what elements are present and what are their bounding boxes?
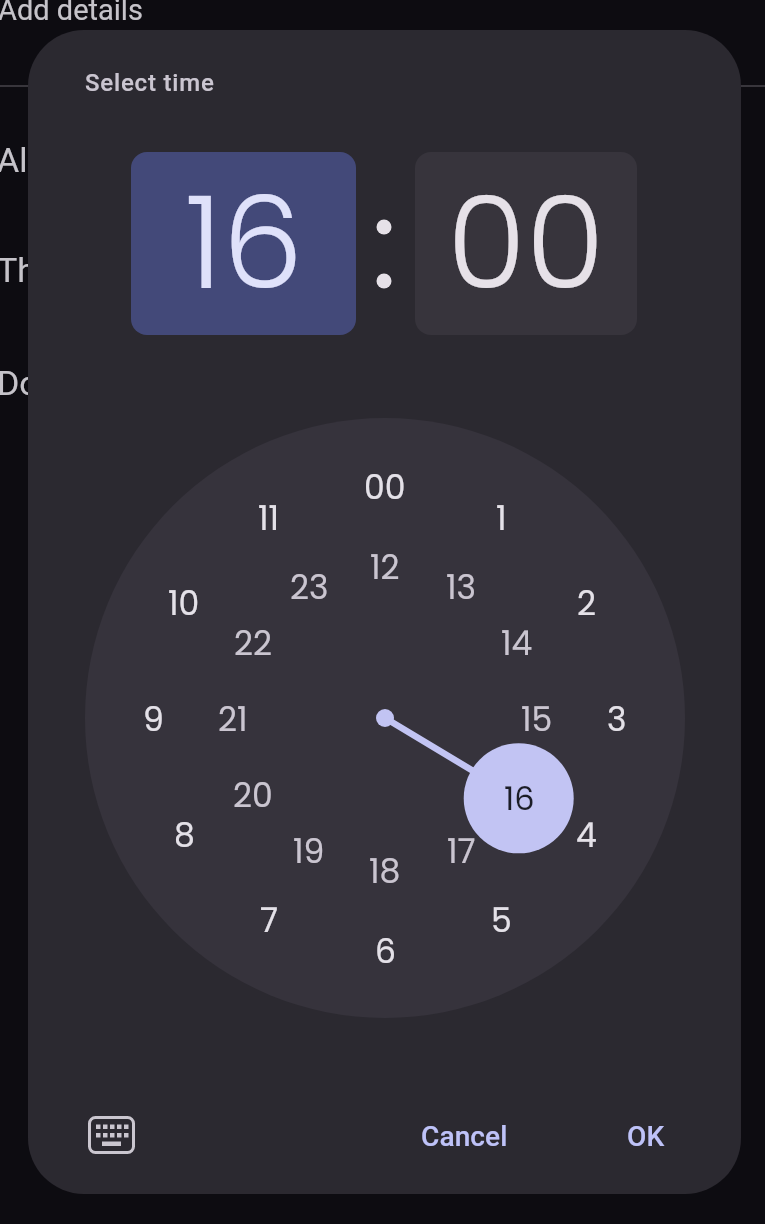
button[interactable]: 00	[415, 152, 637, 335]
button[interactable]: Cancel	[394, 1108, 534, 1164]
staticText: Add details	[0, 0, 143, 27]
staticText: 8	[174, 812, 195, 856]
staticText: All	[0, 140, 36, 180]
staticText: Select time	[85, 69, 215, 97]
staticText: 21	[218, 696, 248, 740]
staticText: 6	[375, 928, 396, 972]
button[interactable]: 16	[131, 152, 356, 335]
staticText: OK	[627, 1120, 665, 1153]
staticText: 16	[185, 154, 303, 333]
staticText: 12	[370, 544, 400, 588]
staticText: 2	[577, 580, 596, 624]
staticText: 20	[233, 772, 273, 816]
staticText: 13	[446, 564, 476, 608]
staticText: 00	[364, 464, 406, 508]
staticText: 14	[501, 620, 533, 664]
staticText: 1	[496, 495, 507, 539]
staticText: Cancel	[421, 1120, 508, 1153]
staticText: 17	[447, 828, 476, 872]
staticText: 00	[447, 154, 605, 333]
staticText: 7	[260, 897, 279, 941]
staticText: 16	[504, 776, 535, 821]
staticText: 23	[290, 564, 329, 608]
staticText: 18	[369, 848, 401, 892]
staticText: 15	[521, 696, 553, 740]
button[interactable]: OK	[601, 1108, 691, 1164]
staticText: 19	[293, 828, 325, 872]
staticText: Do	[0, 363, 39, 403]
staticText: 11	[258, 495, 280, 539]
button[interactable]	[76, 1104, 146, 1166]
staticText: Th	[0, 250, 37, 290]
staticText: 22	[234, 620, 272, 664]
staticText: 10	[168, 580, 200, 624]
staticText: 9	[143, 696, 164, 740]
staticText: 3	[607, 696, 627, 740]
staticText: 4	[576, 812, 597, 856]
staticText: 5	[491, 897, 512, 941]
